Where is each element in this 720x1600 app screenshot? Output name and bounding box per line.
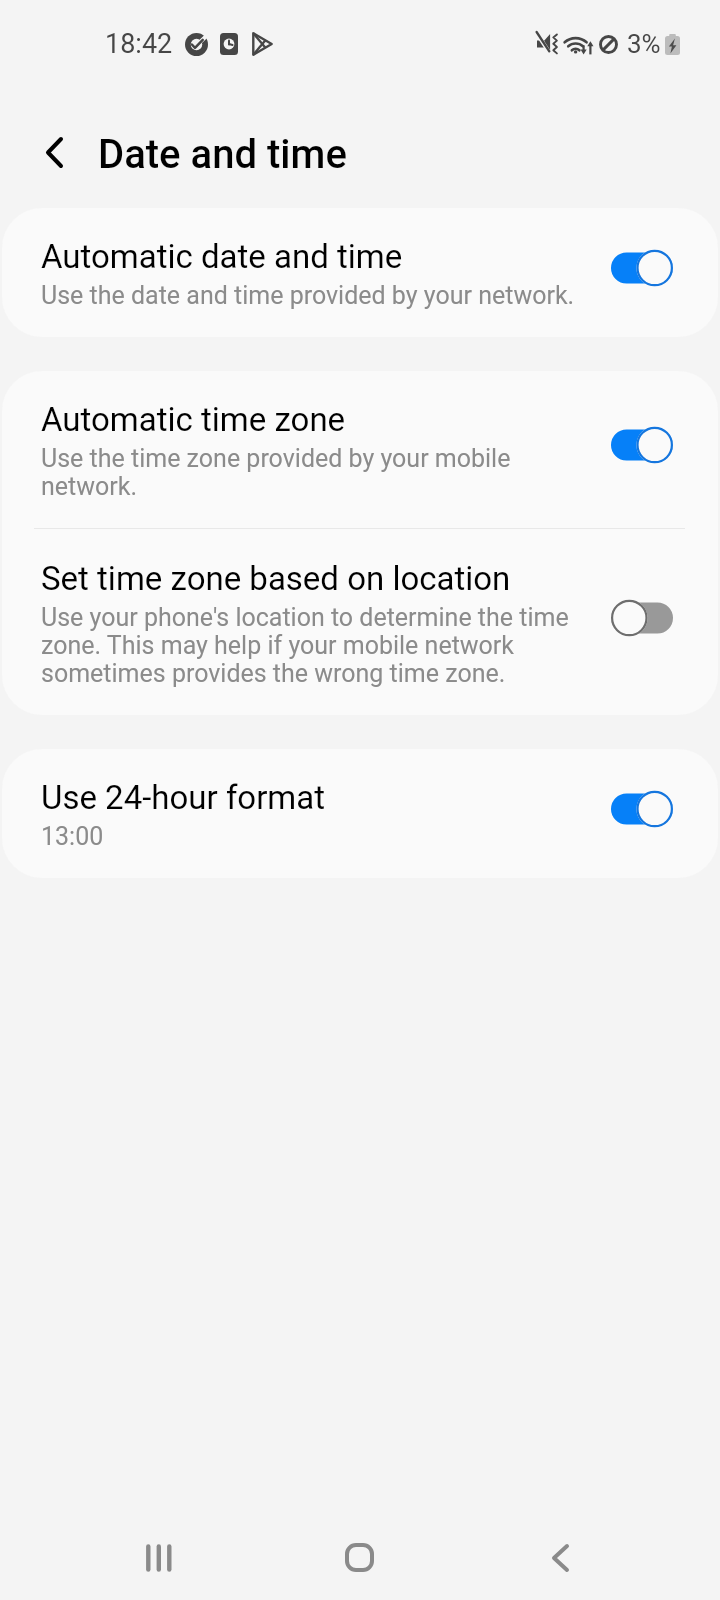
- button[interactable]: On: [611, 790, 673, 828]
- staticText: Use the time zone provided by your mobil…: [41, 444, 576, 501]
- staticText: 3%: [627, 29, 661, 59]
- staticText: Date and time: [98, 131, 347, 178]
- staticText: Use the date and time provided by your n…: [41, 281, 575, 310]
- button[interactable]: Recent apps: [59, 1515, 259, 1600]
- button[interactable]: Use 24-hour format: [2, 749, 718, 878]
- button[interactable]: On: [611, 426, 673, 464]
- staticText: 18:42: [105, 28, 173, 60]
- button[interactable]: Back: [460, 1515, 661, 1600]
- staticText: Automatic time zone: [41, 400, 346, 439]
- button[interactable]: Automatic time zone: [2, 371, 718, 528]
- staticText: Use your phone's location to determine t…: [41, 603, 576, 688]
- staticText: Use 24-hour format: [41, 778, 326, 817]
- button[interactable]: Navigate up: [28, 126, 80, 178]
- button[interactable]: On: [611, 249, 673, 287]
- staticText: Automatic date and time: [41, 237, 403, 276]
- staticText: Set time zone based on location: [41, 559, 511, 598]
- staticText: 13:00: [41, 822, 104, 851]
- button[interactable]: Home: [259, 1515, 460, 1600]
- button[interactable]: Set time zone based on location: [2, 530, 718, 715]
- button[interactable]: Off: [611, 599, 673, 637]
- button[interactable]: Automatic date and time: [2, 208, 718, 337]
